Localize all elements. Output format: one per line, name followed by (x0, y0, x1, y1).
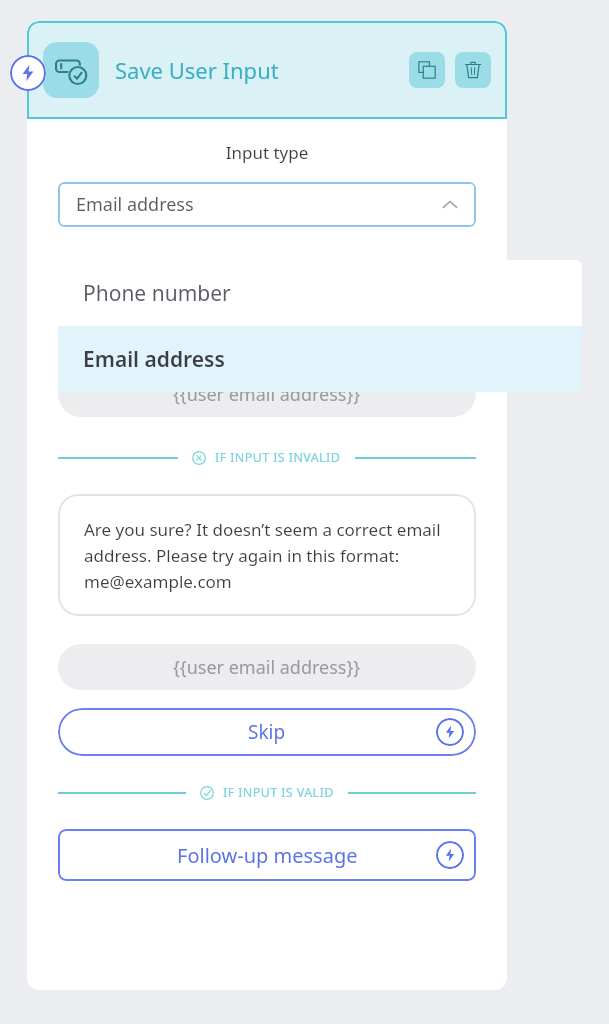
button[interactable]: Email address (58, 182, 476, 227)
button[interactable]: Duplicate (409, 52, 445, 88)
staticText: IF INPUT IS VALID (223, 784, 334, 801)
staticText: Input type (27, 141, 507, 164)
staticText: Email address (83, 345, 225, 374)
staticText: Follow-up message (177, 842, 358, 869)
button[interactable]: {{user email address}} (58, 644, 476, 690)
button[interactable]: {{user email address}} (58, 371, 476, 417)
staticText: IF INPUT IS INVALID (215, 449, 341, 466)
staticText: Are you sure? It doesn’t seem a correct … (84, 518, 450, 593)
staticText: Skip (248, 719, 286, 745)
staticText: Email address (76, 192, 194, 217)
button[interactable]: Follow-up message (58, 829, 476, 881)
staticText: Save User Input (115, 55, 279, 85)
staticText: {{user email address}} (173, 382, 361, 407)
button[interactable]: Are you sure? It doesn’t seem a correct … (58, 494, 476, 616)
staticText: Phone number (83, 279, 231, 308)
button[interactable]: Email address (58, 326, 582, 392)
staticText: {{user email address}} (173, 655, 361, 680)
button[interactable]: Trigger (10, 55, 46, 91)
button[interactable]: Phone number (58, 260, 582, 326)
button[interactable]: Delete (455, 52, 491, 88)
button[interactable]: Skip (58, 708, 476, 756)
